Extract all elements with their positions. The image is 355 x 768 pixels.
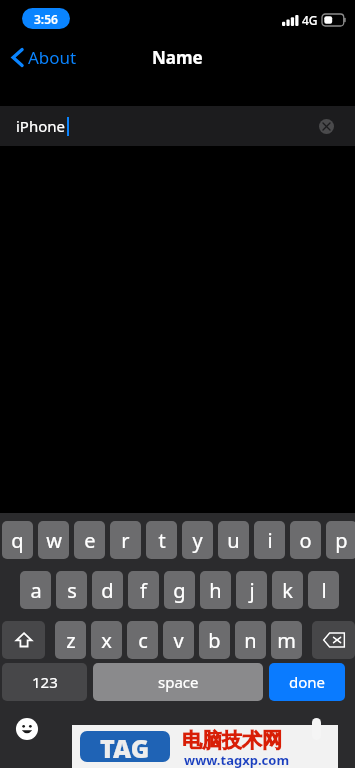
staticText: r (121, 527, 130, 554)
staticText: done (289, 672, 326, 692)
staticText: p (335, 527, 348, 554)
staticText: t (158, 527, 166, 554)
button[interactable]: iPhone (0, 106, 355, 146)
staticText: h (209, 577, 222, 604)
staticText: d (101, 577, 114, 604)
button[interactable]: About (8, 42, 81, 73)
button[interactable]: t (146, 521, 177, 559)
button[interactable]: d (92, 571, 123, 609)
button[interactable]: x (91, 621, 122, 659)
staticText: y (192, 527, 203, 554)
staticText: www.tagxp.com (184, 751, 290, 768)
staticText: v (173, 627, 184, 654)
staticText: c (138, 627, 148, 654)
button[interactable]: space (93, 663, 263, 701)
staticText: m (277, 627, 296, 654)
staticText: x (101, 627, 112, 654)
button[interactable]: k (272, 571, 303, 609)
button[interactable]: Clear text (319, 119, 334, 134)
button[interactable]: f (128, 571, 159, 609)
button[interactable]: n (235, 621, 266, 659)
button[interactable]: Emoji keyboard (14, 716, 40, 742)
staticText: o (299, 527, 312, 554)
button[interactable]: z (55, 621, 86, 659)
button[interactable]: a (20, 571, 51, 609)
staticText: TAG (100, 731, 150, 762)
button[interactable]: h (200, 571, 231, 609)
button[interactable]: 123 (2, 663, 87, 701)
button[interactable]: s (56, 571, 87, 609)
staticText: e (84, 527, 96, 554)
button[interactable]: r (110, 521, 141, 559)
staticText: iPhone (16, 116, 66, 136)
button[interactable]: Backspace (312, 621, 355, 659)
button[interactable]: q (2, 521, 33, 559)
button[interactable]: m (271, 621, 302, 659)
staticText: i (267, 527, 273, 554)
button[interactable]: w (38, 521, 69, 559)
button[interactable]: c (127, 621, 158, 659)
button[interactable]: b (199, 621, 230, 659)
button[interactable]: Shift (2, 621, 45, 659)
button[interactable]: l (308, 571, 339, 609)
staticText: l (321, 577, 327, 604)
staticText: z (66, 627, 76, 654)
staticText: n (244, 627, 257, 654)
button[interactable]: y (182, 521, 213, 559)
button[interactable]: j (236, 571, 267, 609)
staticText: j (249, 577, 255, 604)
staticText: About (28, 46, 77, 69)
staticText: f (140, 577, 147, 604)
staticText: a (30, 577, 42, 604)
staticText: u (227, 527, 240, 554)
staticText: w (46, 527, 62, 554)
button[interactable]: e (74, 521, 105, 559)
staticText: 123 (32, 672, 58, 692)
button[interactable]: p (326, 521, 355, 559)
staticText: q (11, 527, 24, 554)
button[interactable]: o (290, 521, 321, 559)
staticText: b (208, 627, 221, 654)
button[interactable]: v (163, 621, 194, 659)
staticText: 电脑技术网 (182, 728, 282, 753)
staticText: space (158, 672, 199, 692)
button[interactable]: g (164, 571, 195, 609)
staticText: 4G (302, 12, 318, 28)
button[interactable]: u (218, 521, 249, 559)
button[interactable]: i (254, 521, 285, 559)
button[interactable]: done (269, 663, 345, 701)
staticText: Name (152, 46, 203, 69)
staticText: k (282, 577, 293, 604)
staticText: g (173, 577, 186, 604)
staticText: s (67, 577, 77, 604)
staticText: 3:56 (34, 11, 58, 27)
